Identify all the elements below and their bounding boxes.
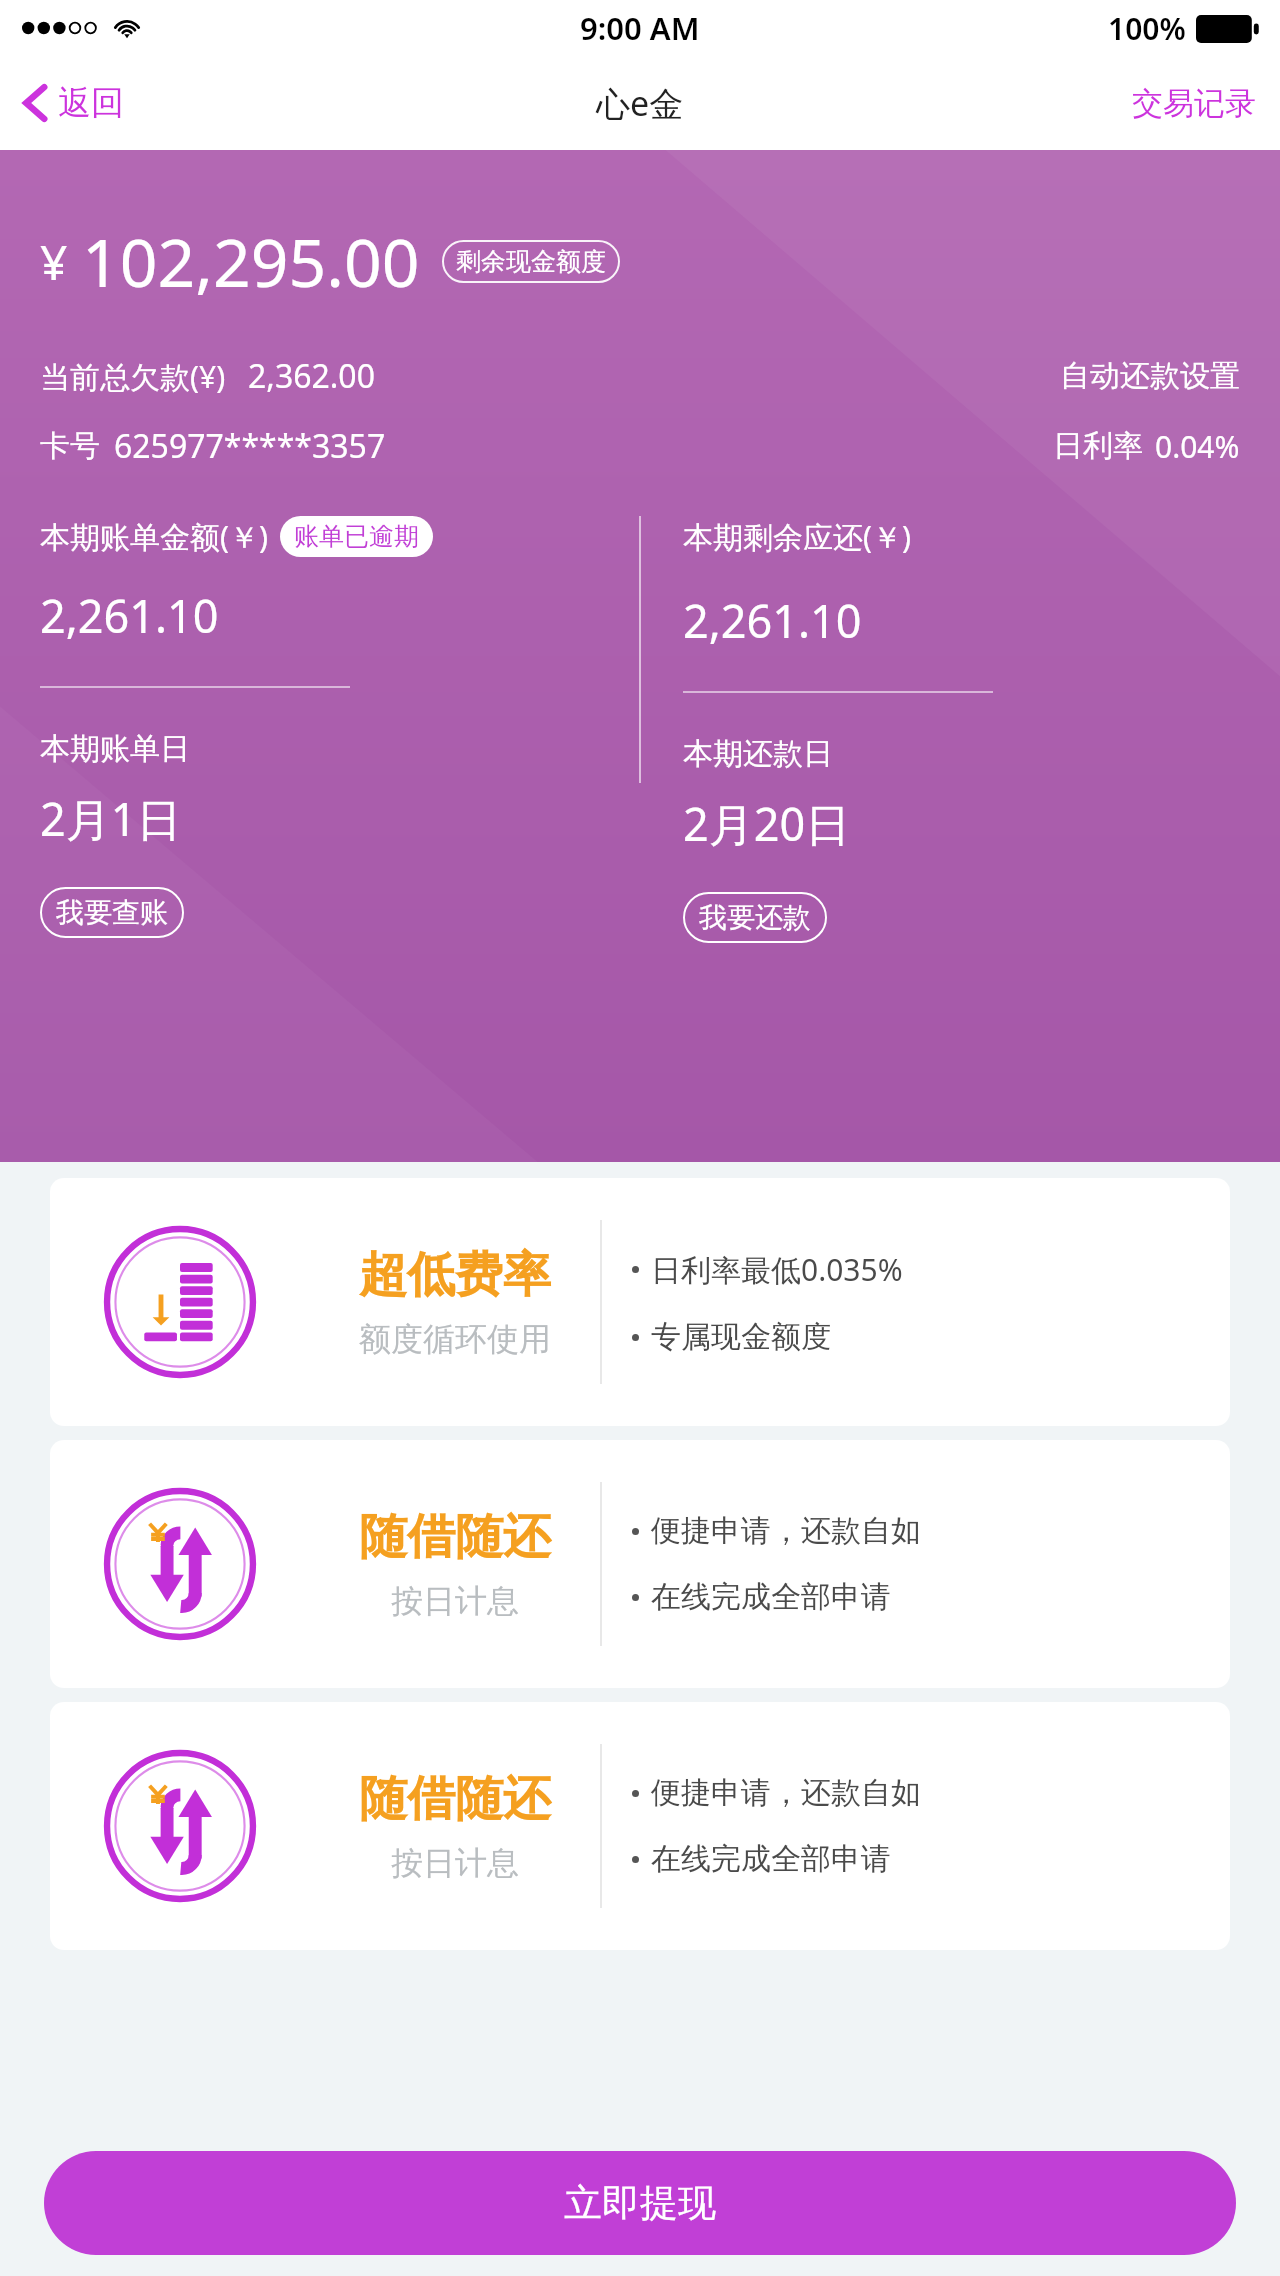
button[interactable]: 我要查账 (40, 887, 184, 938)
staticText: 立即提现 (564, 2179, 716, 2227)
staticText: 额度循环使用 (359, 1319, 551, 1359)
staticText: 2,261.10 (683, 590, 862, 651)
staticText: 我要查账 (56, 895, 168, 930)
staticText: 本期账单金额(￥) (40, 516, 268, 557)
button[interactable]: 超低费率 (50, 1178, 1230, 1426)
staticText: 剩余现金额度 (456, 246, 606, 277)
staticText: 日利率最低0.035% (651, 1249, 903, 1290)
staticText: 625977*****3357 (114, 424, 386, 468)
staticText: 专属现金额度 (651, 1318, 831, 1356)
staticText: 2月20日 (683, 793, 851, 854)
staticText: 随借随还 (359, 1769, 551, 1829)
button[interactable]: 随借随还 (50, 1440, 1230, 1688)
staticText: 2,362.00 (248, 354, 375, 398)
staticText: 本期账单日 (40, 730, 190, 768)
staticText: 随借随还 (359, 1507, 551, 1567)
staticText: 9:00 AM (580, 7, 700, 49)
staticText: 在线完成全部申请 (651, 1840, 891, 1878)
staticText: 便捷申请，还款自如 (651, 1512, 921, 1550)
staticText: 按日计息 (391, 1843, 519, 1883)
staticText: 心e金 (596, 80, 684, 126)
staticText: 自动还款设置 (1060, 357, 1240, 395)
staticText: 按日计息 (391, 1581, 519, 1621)
staticText: 返回 (58, 82, 124, 124)
staticText: 本期还款日 (683, 735, 833, 773)
staticText: 0.04% (1155, 426, 1240, 467)
staticText: 本期剩余应还(￥) (683, 516, 911, 557)
button[interactable]: 自动还款设置 (1060, 357, 1240, 395)
staticText: 在线完成全部申请 (651, 1578, 891, 1616)
other: 随借随还 (104, 1488, 256, 1640)
button[interactable]: 随借随还 (50, 1702, 1230, 1950)
staticText: 日利率 (1053, 427, 1143, 465)
button[interactable]: 返回 (0, 68, 148, 138)
staticText: 102,295.00 (82, 216, 420, 306)
staticText: 当前总欠款(¥) (40, 356, 226, 397)
staticText: 2,261.10 (40, 585, 219, 646)
staticText: 账单已逾期 (294, 521, 419, 552)
button[interactable]: 我要还款 (683, 892, 827, 943)
staticText: 卡号 (40, 427, 100, 465)
other: 超低费率 (104, 1226, 256, 1378)
button[interactable]: 交易记录 (1108, 70, 1280, 137)
staticText: 我要还款 (699, 900, 811, 935)
staticText: 100% (1108, 8, 1186, 49)
staticText: 2月1日 (40, 788, 182, 849)
other: 随借随还 (104, 1750, 256, 1902)
button[interactable]: 立即提现 (44, 2151, 1236, 2255)
staticText: 交易记录 (1132, 84, 1256, 123)
staticText: ¥ (40, 229, 68, 294)
staticText: 超低费率 (359, 1245, 551, 1305)
staticText: 便捷申请，还款自如 (651, 1774, 921, 1812)
